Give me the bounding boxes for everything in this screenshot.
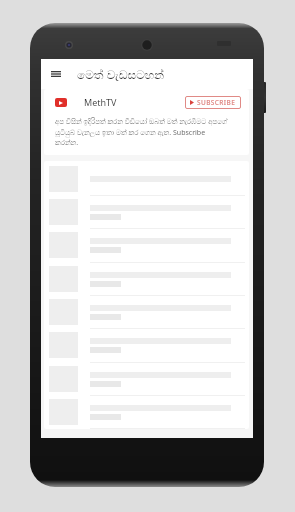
staticText: MethTV [84,96,117,108]
button[interactable] [44,196,249,228]
button[interactable] [44,396,249,428]
button[interactable] [44,263,249,295]
button[interactable] [44,296,249,328]
staticText: SUBSCRIBE [197,98,236,107]
button[interactable] [44,163,249,195]
staticText: අප විසින් ඉදිරිපත් කරන වීඩියෝ ඔබත් මත් න… [55,117,230,147]
button[interactable] [44,363,249,395]
button[interactable]: SUBSCRIBE [185,96,241,109]
button[interactable] [44,229,249,261]
button[interactable] [44,329,249,361]
button[interactable]: Open navigation menu [46,63,66,85]
staticText: මෙත් වැඩසටහන් [77,66,164,82]
